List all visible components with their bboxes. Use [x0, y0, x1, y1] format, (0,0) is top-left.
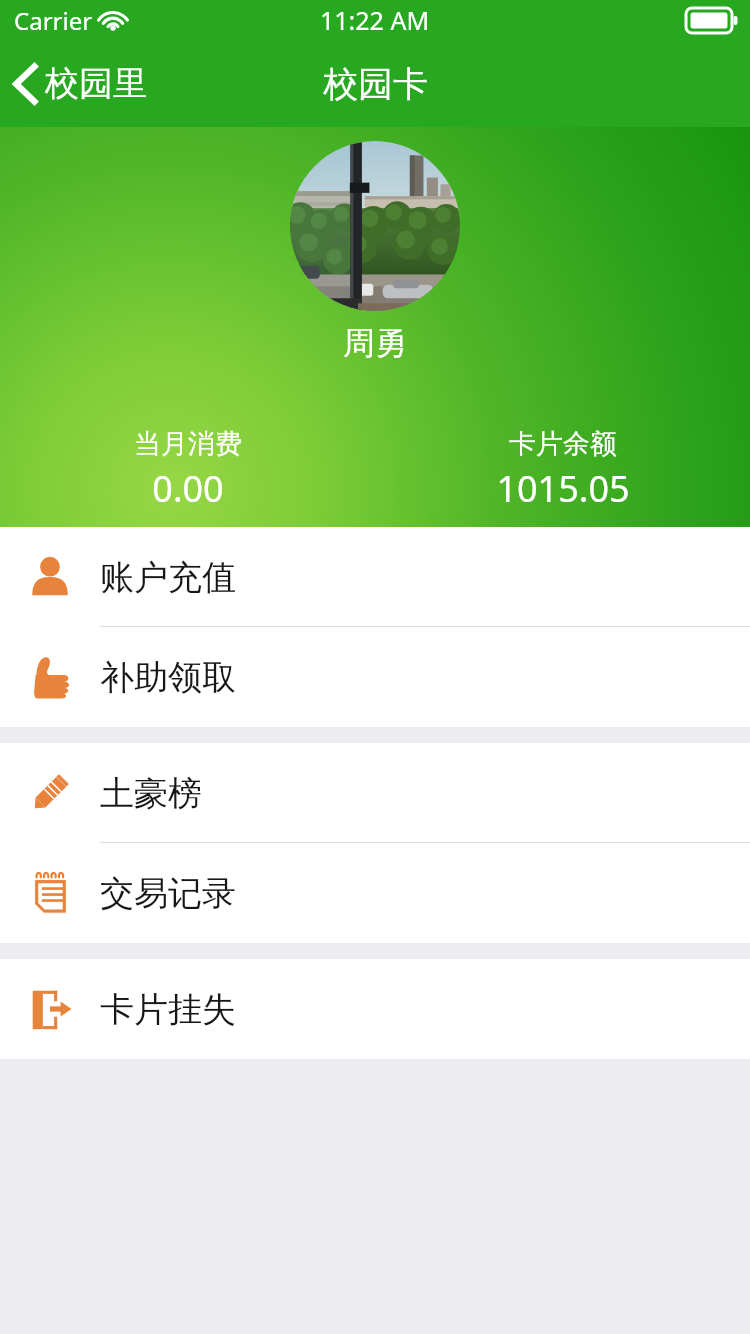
staticText: 补助领取 — [100, 656, 236, 699]
staticText: 校园卡 — [323, 62, 428, 106]
button[interactable]: 土豪榜 — [0, 743, 750, 843]
button[interactable]: Back — [4, 52, 157, 115]
staticText: 1015.05 — [496, 464, 630, 513]
staticText: 0.00 — [152, 464, 224, 513]
staticText: 周勇 — [343, 323, 407, 363]
staticText: 账户充值 — [100, 556, 236, 599]
staticText: 卡片挂失 — [100, 988, 236, 1031]
staticText: Carrier — [14, 4, 93, 37]
staticText: 当月消费 — [134, 427, 242, 461]
button[interactable]: 补助领取 — [0, 627, 750, 727]
staticText: 校园里 — [45, 62, 147, 105]
button[interactable]: 交易记录 — [0, 843, 750, 943]
button[interactable]: 卡片挂失 — [0, 959, 750, 1059]
button[interactable]: 账户充值 — [0, 527, 750, 627]
staticText: 11:22 AM — [320, 3, 430, 37]
staticText: 土豪榜 — [100, 772, 202, 815]
staticText: 交易记录 — [100, 872, 236, 915]
staticText: 卡片余额 — [509, 427, 617, 461]
other: Back — [14, 64, 36, 104]
